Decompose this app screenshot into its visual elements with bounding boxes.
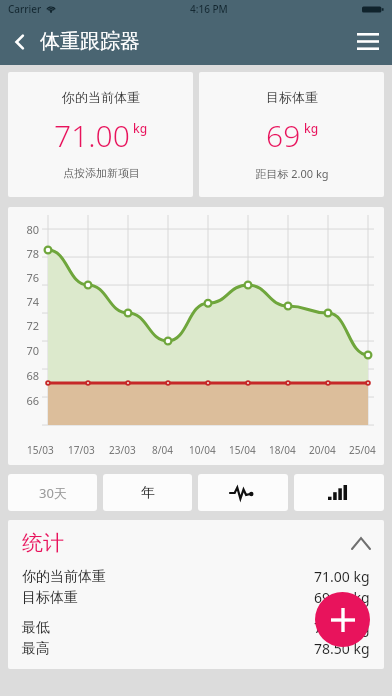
button[interactable]: 年 (103, 474, 192, 511)
staticText: 71.00 (54, 115, 130, 156)
staticText: 70 (8, 343, 39, 358)
staticText: 体重跟踪器 (40, 29, 140, 54)
staticText: 18/04 (269, 443, 296, 457)
staticText: 68 (8, 368, 39, 383)
staticText: 8/04 (152, 443, 173, 457)
staticText: 15/04 (229, 443, 256, 457)
staticText: 76 (8, 270, 39, 285)
button[interactable]: 你的当前体重 (8, 72, 193, 197)
staticText: 10/04 (189, 443, 216, 457)
staticText: 距目标 2.00 kg (255, 166, 329, 181)
button[interactable]: 30天 (8, 474, 97, 511)
staticText: 15/03 (27, 443, 54, 457)
staticText: 年 (141, 484, 155, 502)
staticText: 71.00 kg (314, 567, 370, 586)
staticText: kg (304, 120, 319, 136)
staticText: 目标体重 (266, 89, 318, 105)
button[interactable]: 最高 (22, 638, 370, 659)
button[interactable]: Pulse chart (198, 474, 288, 511)
staticText: 17/03 (68, 443, 95, 457)
button[interactable]: Bar chart (294, 474, 384, 511)
button[interactable]: 目标体重 (199, 72, 384, 197)
button[interactable]: Back (0, 18, 40, 65)
staticText: 69 (266, 115, 301, 156)
staticText: 4:16 PM (190, 2, 228, 16)
button[interactable]: 目标体重 (22, 587, 370, 608)
staticText: 20/04 (309, 443, 336, 457)
staticText: 30天 (39, 484, 67, 502)
button[interactable]: 统计 (22, 520, 370, 566)
staticText: 72 (8, 318, 39, 333)
staticText: 74 (8, 294, 39, 309)
button[interactable]: 80 (8, 207, 384, 465)
staticText: 最低 (22, 619, 50, 637)
button[interactable]: 你的当前体重 (22, 566, 370, 587)
staticText: 点按添加新项目 (63, 166, 140, 180)
staticText: 78.50 kg (314, 639, 370, 658)
staticText: 你的当前体重 (62, 89, 140, 105)
staticText: 69.00 kg (314, 588, 370, 607)
staticText: 78 (8, 246, 39, 261)
button[interactable]: Menu (344, 18, 392, 65)
staticText: 80 (8, 222, 39, 237)
staticText: 你的当前体重 (22, 568, 106, 586)
staticText: 25/04 (349, 443, 376, 457)
button[interactable]: 最低 (22, 617, 370, 638)
staticText: 23/03 (109, 443, 136, 457)
staticText: 66 (8, 393, 39, 408)
button[interactable]: Add entry (315, 592, 370, 647)
staticText: 71.00 kg (314, 618, 370, 637)
staticText: 最高 (22, 640, 50, 658)
staticText: kg (133, 120, 148, 136)
staticText: Carrier (8, 2, 42, 16)
staticText: 统计 (22, 530, 64, 556)
staticText: 目标体重 (22, 589, 78, 607)
